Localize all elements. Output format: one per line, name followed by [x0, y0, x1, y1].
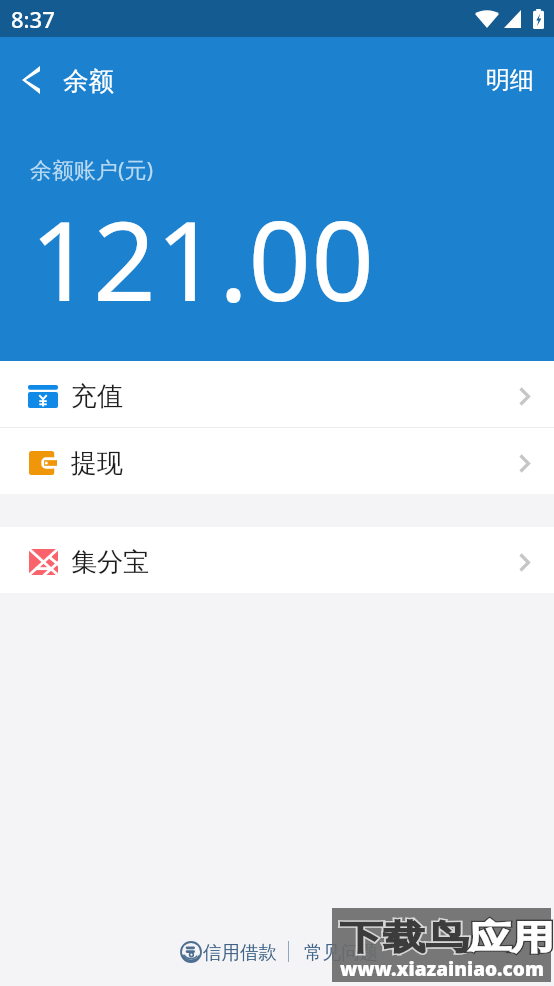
staticText: 8:37 — [11, 4, 55, 34]
staticText: 提现 — [71, 447, 123, 480]
staticText: 集分宝 — [71, 546, 149, 579]
staticText: 下载鸟 — [340, 916, 468, 959]
button[interactable]: 明细 — [464, 39, 554, 121]
button[interactable]: 信用借款 — [174, 934, 277, 969]
button[interactable]: 集分宝 — [0, 527, 554, 593]
staticText: 下载鸟 — [340, 916, 468, 959]
staticText: 余额 — [63, 65, 114, 97]
staticText: 余额账户(元) — [30, 154, 154, 184]
button[interactable]: 提现 — [0, 428, 554, 494]
staticText: 应用 — [468, 916, 554, 959]
staticText: 常见问题 — [304, 941, 378, 964]
staticText: 充值 — [71, 380, 123, 413]
staticText: 应用 — [468, 916, 554, 959]
staticText: 121.00 — [30, 183, 375, 333]
button[interactable]: 常见问题 — [302, 934, 380, 969]
staticText: www.xiazainiao.com — [340, 956, 544, 982]
button[interactable]: Back — [0, 39, 62, 121]
button[interactable]: 充值 — [0, 361, 554, 427]
staticText: 信用借款 — [203, 941, 277, 964]
staticText: 明细 — [486, 65, 534, 95]
